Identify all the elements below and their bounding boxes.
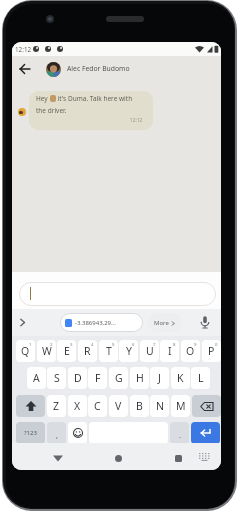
button[interactable]: A bbox=[27, 367, 46, 389]
button[interactable]: D bbox=[68, 367, 87, 389]
staticText: G bbox=[115, 371, 123, 385]
button[interactable]: -3.386943,29... bbox=[60, 313, 143, 332]
button[interactable]: O bbox=[181, 340, 200, 362]
button[interactable]: R bbox=[78, 340, 97, 362]
button[interactable] bbox=[111, 451, 125, 465]
button[interactable]: Y bbox=[119, 340, 138, 362]
staticText: 7 bbox=[153, 341, 156, 347]
staticText: Alec Fedor Budomo bbox=[67, 64, 130, 73]
button[interactable]: S bbox=[47, 367, 66, 389]
staticText: R bbox=[84, 344, 91, 358]
button[interactable]: N bbox=[150, 395, 169, 417]
button[interactable]: F bbox=[88, 367, 107, 389]
button[interactable]: ?123 bbox=[16, 422, 45, 444]
button[interactable]: P bbox=[202, 340, 221, 362]
button[interactable]: L bbox=[191, 367, 210, 389]
staticText: 0 bbox=[215, 341, 218, 347]
button[interactable] bbox=[192, 395, 221, 417]
staticText: 2 bbox=[50, 341, 53, 347]
button[interactable]: I bbox=[160, 340, 179, 362]
staticText: E bbox=[64, 344, 70, 358]
staticText: S bbox=[54, 371, 60, 385]
staticText: I bbox=[168, 344, 172, 358]
staticText: Hey bbox=[36, 94, 50, 103]
button[interactable]: C bbox=[88, 395, 107, 417]
button[interactable]: K bbox=[171, 367, 190, 389]
button[interactable] bbox=[171, 451, 185, 465]
staticText: A bbox=[33, 371, 40, 385]
staticText: 6 bbox=[132, 341, 135, 347]
button[interactable]: More bbox=[148, 313, 182, 332]
staticText: V bbox=[115, 399, 122, 413]
staticText: W bbox=[42, 344, 52, 358]
staticText: ?123 bbox=[24, 429, 37, 437]
button[interactable]: B bbox=[130, 395, 149, 417]
button[interactable]: X bbox=[68, 395, 87, 417]
staticText: F bbox=[95, 371, 101, 385]
staticText: L bbox=[198, 371, 204, 385]
button[interactable]: W bbox=[37, 340, 56, 362]
staticText: More bbox=[154, 319, 169, 327]
staticText: B bbox=[136, 399, 143, 413]
button[interactable]: E bbox=[57, 340, 76, 362]
staticText: Q bbox=[21, 344, 30, 358]
staticText: it's Duma. Talk here with bbox=[56, 94, 133, 103]
button[interactable] bbox=[89, 422, 168, 444]
staticText: M bbox=[176, 399, 186, 413]
staticText: . bbox=[179, 431, 181, 441]
staticText: C bbox=[94, 399, 101, 413]
staticText: T bbox=[106, 344, 112, 358]
button[interactable] bbox=[191, 422, 220, 444]
button[interactable]: V bbox=[109, 395, 128, 417]
button[interactable] bbox=[198, 315, 212, 330]
staticText: 1 bbox=[29, 341, 32, 347]
button[interactable] bbox=[18, 62, 32, 76]
staticText: X bbox=[74, 399, 81, 413]
staticText: , bbox=[56, 431, 58, 441]
button[interactable] bbox=[19, 282, 216, 306]
staticText: O bbox=[186, 344, 195, 358]
staticText: D bbox=[74, 371, 82, 385]
staticText: the driver. bbox=[36, 106, 67, 115]
button[interactable]: H bbox=[130, 367, 149, 389]
button[interactable]: T bbox=[99, 340, 118, 362]
staticText: H bbox=[136, 371, 144, 385]
button[interactable]: . bbox=[170, 422, 189, 444]
staticText: 12:12 bbox=[15, 45, 32, 54]
staticText: 4 bbox=[91, 341, 94, 347]
button[interactable] bbox=[68, 422, 87, 444]
staticText: 9 bbox=[194, 341, 197, 347]
staticText: U bbox=[146, 344, 154, 358]
button[interactable]: G bbox=[109, 367, 128, 389]
button[interactable]: U bbox=[140, 340, 159, 362]
button[interactable]: Z bbox=[47, 395, 66, 417]
staticText: 8 bbox=[173, 341, 176, 347]
button[interactable]: M bbox=[171, 395, 190, 417]
staticText: Z bbox=[53, 399, 60, 413]
staticText: -3.386943,29... bbox=[75, 319, 116, 327]
button[interactable] bbox=[51, 451, 65, 465]
button[interactable] bbox=[196, 449, 213, 465]
button[interactable] bbox=[16, 395, 45, 417]
button[interactable]: J bbox=[150, 367, 169, 389]
staticText: 3 bbox=[70, 341, 73, 347]
staticText: K bbox=[177, 371, 184, 385]
staticText: N bbox=[156, 399, 164, 413]
staticText: 5 bbox=[112, 341, 115, 347]
button[interactable] bbox=[15, 315, 30, 330]
staticText: J bbox=[158, 371, 161, 385]
staticText: Y bbox=[126, 344, 132, 358]
button[interactable]: , bbox=[47, 422, 66, 444]
staticText: 12:12 bbox=[130, 117, 143, 124]
button[interactable]: Q bbox=[16, 340, 35, 362]
staticText: P bbox=[208, 344, 215, 358]
